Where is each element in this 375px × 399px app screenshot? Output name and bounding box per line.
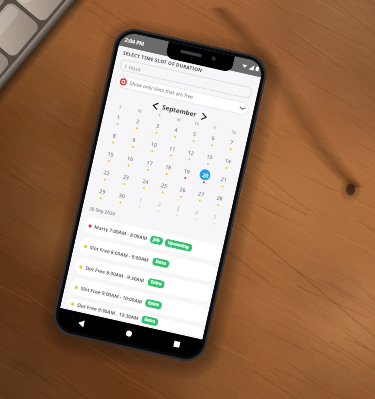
staticText: W [176,117,181,124]
button[interactable]: 4 [184,204,207,227]
staticText: Slot Free 9:30AM - 10:30AM [76,302,139,322]
button[interactable]: 26 [170,182,193,204]
button[interactable]: Slot Free 8:30AM - 9:30AM [73,256,213,303]
staticText: 2 [136,117,140,125]
staticText: 14 [224,156,232,165]
button[interactable]: 24 [132,173,156,196]
staticText: 1 [116,113,121,120]
button[interactable]: Recent apps [170,337,184,351]
staticText: 21 [220,175,228,183]
button[interactable]: 10 [140,136,164,159]
button[interactable]: Back [74,316,88,330]
staticText: 1 Hour [124,62,143,73]
staticText: T [158,113,162,119]
button[interactable]: 30 [108,187,132,210]
button[interactable]: Slot Free 8:00AM - 9:00AM [77,236,218,283]
staticText: 28 [216,194,224,202]
button[interactable]: 1 Hour [118,58,254,100]
staticText: 13 [206,152,213,160]
button[interactable]: 17 [136,155,160,178]
staticText: S [119,104,123,111]
staticText: 12 [187,148,195,156]
button[interactable]: Home [122,326,136,341]
staticText: 30 [118,191,126,199]
button[interactable]: 23 [112,169,136,192]
staticText: 5 [213,212,217,220]
button[interactable]: 18 [156,159,178,182]
button[interactable]: 5 [203,209,226,231]
button[interactable]: 22 [93,165,117,187]
staticText: 26 [179,185,186,193]
staticText: Th [194,121,200,128]
staticText: 7 [230,138,234,146]
staticText: Job [152,237,161,244]
button[interactable]: 29 [89,183,112,206]
staticText: 22 [103,168,110,176]
staticText: 16 [127,154,134,162]
staticText: SELECT TIME SLOT OF DURATION [122,50,203,73]
button[interactable]: Marty 7:00AM - 8:00AM [82,215,222,262]
button[interactable]: Show only slots that are free [115,74,250,116]
button[interactable]: 21 [211,171,234,194]
button[interactable]: 3 [144,118,168,141]
button[interactable]: 1 [105,109,129,132]
button[interactable]: 20 [193,167,215,190]
staticText: Marty 7:00AM - 8:00AM [94,224,148,242]
staticText: 4 [174,126,178,133]
staticText: 4 [194,208,199,216]
staticText: Extra [147,300,159,308]
button[interactable]: 27 [189,186,211,209]
staticText: Slot Free 8:30AM - 9:30AM [84,264,146,285]
button[interactable]: 2 [125,113,149,136]
button[interactable]: 16 [117,150,140,173]
staticText: 25 [161,181,168,189]
staticText: Extra [150,279,162,287]
staticText: Show only slots that are free [129,80,195,101]
button[interactable]: 7 [220,134,242,157]
button[interactable]: 3 [166,200,189,223]
button[interactable]: Slot Free 9:30AM - 10:30AM [65,297,204,338]
staticText: 11 [169,144,176,152]
staticText: 17 [146,158,154,166]
staticText: Extra [144,317,156,325]
button[interactable]: 11 [160,141,182,163]
staticText: Extra [155,259,167,267]
staticText: 5 [192,130,197,137]
staticText: 29 [99,187,106,195]
staticText: Slot Free 8:00AM - 9:00AM [89,244,150,264]
button[interactable]: 14 [215,153,238,176]
button[interactable]: 15 [97,146,121,169]
button[interactable]: 8 [101,127,125,150]
button[interactable]: 6 [201,130,224,153]
button[interactable]: 2 [147,196,170,219]
button[interactable]: Slot Free 9:00AM - 10:00AM [68,277,209,324]
button[interactable]: 12 [178,145,201,167]
button[interactable]: Previous month [150,100,160,111]
staticText: 1 [139,196,143,203]
staticText: September [161,102,197,119]
staticText: 27 [198,189,205,197]
staticText: 2 [157,200,162,207]
staticText: F [213,125,217,132]
button[interactable]: 1 [128,192,152,215]
button[interactable]: 9 [121,132,144,155]
button[interactable]: 25 [151,178,174,200]
button[interactable]: 13 [197,149,220,171]
staticText: 8 [112,131,117,139]
button[interactable]: Next month [198,111,209,121]
button[interactable]: 5 [182,126,205,149]
staticText: 10 [150,140,158,148]
staticText: 20 [202,171,209,179]
button[interactable]: 28 [207,190,230,213]
staticText: 24 [142,177,149,185]
staticText: 6 [211,134,215,141]
staticText: 3 [176,204,180,211]
staticText: Sa [231,129,237,136]
staticText: 9 [132,136,136,143]
staticText: 15 [107,150,114,158]
button[interactable]: 19 [174,163,197,186]
button[interactable]: 4 [164,122,187,145]
staticText: Slot Free 9:00AM - 10:00AM [80,285,143,306]
staticText: 3 [155,122,160,129]
staticText: 20 Sep 2024 [89,205,116,217]
